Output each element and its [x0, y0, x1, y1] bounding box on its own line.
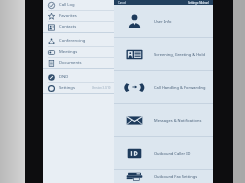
staticText: User Info: [154, 19, 172, 24]
button[interactable]: Do Not Disturb: [43, 72, 114, 82]
button[interactable]: Meetings: [43, 47, 114, 57]
staticText: Messages & Notifications: [154, 118, 202, 123]
staticText: Favorites: [59, 13, 77, 19]
button[interactable]: Favorites: [43, 11, 114, 21]
staticText: Cancel: [118, 1, 127, 5]
other: User Info: [126, 13, 143, 30]
button[interactable]: User Info: [114, 5, 213, 37]
other: Documents: [48, 60, 55, 67]
other: Outbound Caller ID: [126, 145, 143, 162]
button[interactable]: Outbound Fax Settings: [114, 170, 213, 183]
staticText: Documents: [59, 60, 82, 66]
button[interactable]: Screening, Greeting and Hold: [114, 38, 213, 70]
other: Settings: [48, 85, 55, 92]
other: Conferencing: [48, 38, 55, 45]
other: Call Log: [48, 2, 55, 9]
other: Messages and Notifications: [126, 112, 143, 129]
staticText: Call Handling & Forwarding: [154, 85, 206, 90]
button[interactable]: Messages and Notifications: [114, 104, 213, 136]
button[interactable]: Contacts: [43, 22, 114, 32]
other: Contacts: [48, 24, 55, 31]
other: Outbound Fax Settings: [126, 170, 143, 183]
other: Screening, Greeting and Hold: [126, 46, 143, 63]
staticText: Version 3.0.10: [92, 86, 111, 90]
button[interactable]: Outbound Caller ID: [114, 137, 213, 169]
staticText: Contacts: [59, 24, 77, 30]
other: Do Not Disturb: [48, 74, 55, 81]
button[interactable]: Call Handling and Forwarding: [114, 71, 213, 103]
button[interactable]: Call Log: [43, 0, 114, 10]
button[interactable]: Documents: [43, 58, 114, 68]
staticText: Screening, Greeting & Hold: [154, 52, 206, 57]
staticText: Outbound Caller ID: [154, 151, 191, 156]
staticText: Conferencing: [59, 38, 86, 44]
other: Call Handling and Forwarding: [126, 79, 143, 96]
button[interactable]: Conferencing: [43, 36, 114, 46]
staticText: DND: [59, 74, 69, 80]
staticText: Outbound Fax Settings: [154, 174, 198, 179]
button[interactable]: Settings: [43, 83, 114, 93]
staticText: Call Log: [59, 2, 75, 8]
staticText: Meetings: [59, 49, 78, 55]
other: Favorites: [48, 13, 55, 20]
staticText: Settings: [59, 85, 75, 91]
staticText: Settings: Michael: [188, 1, 209, 5]
other: Meetings: [48, 49, 55, 56]
